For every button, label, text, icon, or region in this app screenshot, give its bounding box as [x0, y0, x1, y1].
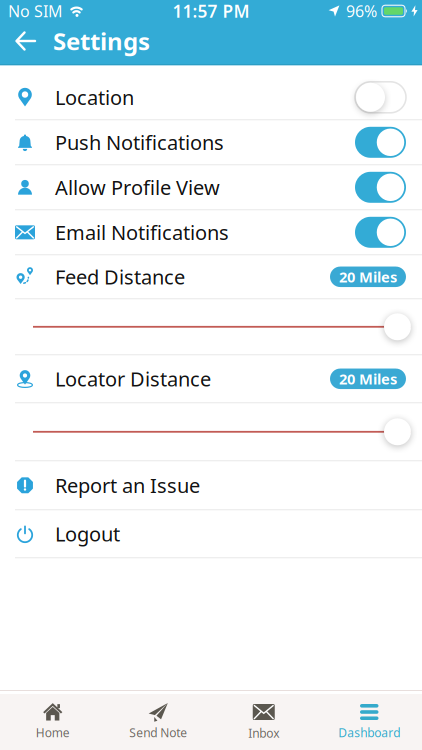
- button[interactable]: Report an Issue: [0, 461, 422, 509]
- staticText: Allow Profile View: [55, 174, 220, 201]
- staticText: Dashboard: [338, 724, 400, 740]
- staticText: Home: [36, 724, 70, 740]
- staticText: Locator Distance: [55, 365, 211, 392]
- button[interactable]: On: [355, 217, 406, 248]
- staticText: Settings: [53, 25, 150, 57]
- staticText: Email Notifications: [55, 219, 229, 246]
- staticText: Logout: [55, 520, 120, 547]
- button[interactable]: Off: [355, 82, 406, 113]
- staticText: 11:57 PM: [172, 0, 249, 22]
- button[interactable]: Logout: [0, 510, 422, 557]
- staticText: 20 Miles: [339, 267, 397, 287]
- staticText: Location: [55, 84, 134, 111]
- staticText: Inbox: [248, 725, 279, 741]
- staticText: Push Notifications: [55, 129, 224, 156]
- staticText: Send Note: [129, 724, 187, 740]
- staticText: Feed Distance: [55, 263, 185, 290]
- staticText: 20 Miles: [339, 369, 397, 389]
- button[interactable]: Send Note: [105, 691, 211, 746]
- button[interactable]: On: [355, 127, 406, 158]
- button[interactable]: Dashboard: [316, 691, 422, 746]
- button[interactable]: Back: [0, 22, 53, 60]
- staticText: Report an Issue: [55, 472, 200, 499]
- button[interactable]: Home: [0, 691, 105, 746]
- button[interactable]: Inbox: [211, 691, 316, 746]
- staticText: 96%: [346, 0, 377, 22]
- button[interactable]: Distance slider: [0, 299, 422, 354]
- button[interactable]: On: [355, 172, 406, 203]
- button[interactable]: Distance slider: [0, 404, 422, 459]
- staticText: No SIM: [8, 0, 63, 22]
